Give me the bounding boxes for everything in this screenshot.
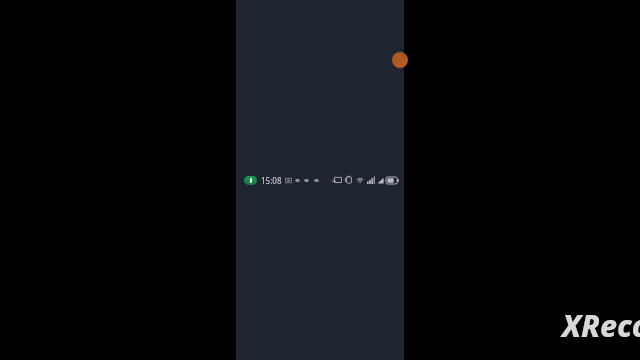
staticText: 15:08: [261, 175, 282, 186]
button[interactable]: Floating action button: [392, 52, 408, 68]
staticText: XRecorder: [562, 305, 640, 346]
button[interactable]: Screen recording active: [244, 176, 257, 185]
